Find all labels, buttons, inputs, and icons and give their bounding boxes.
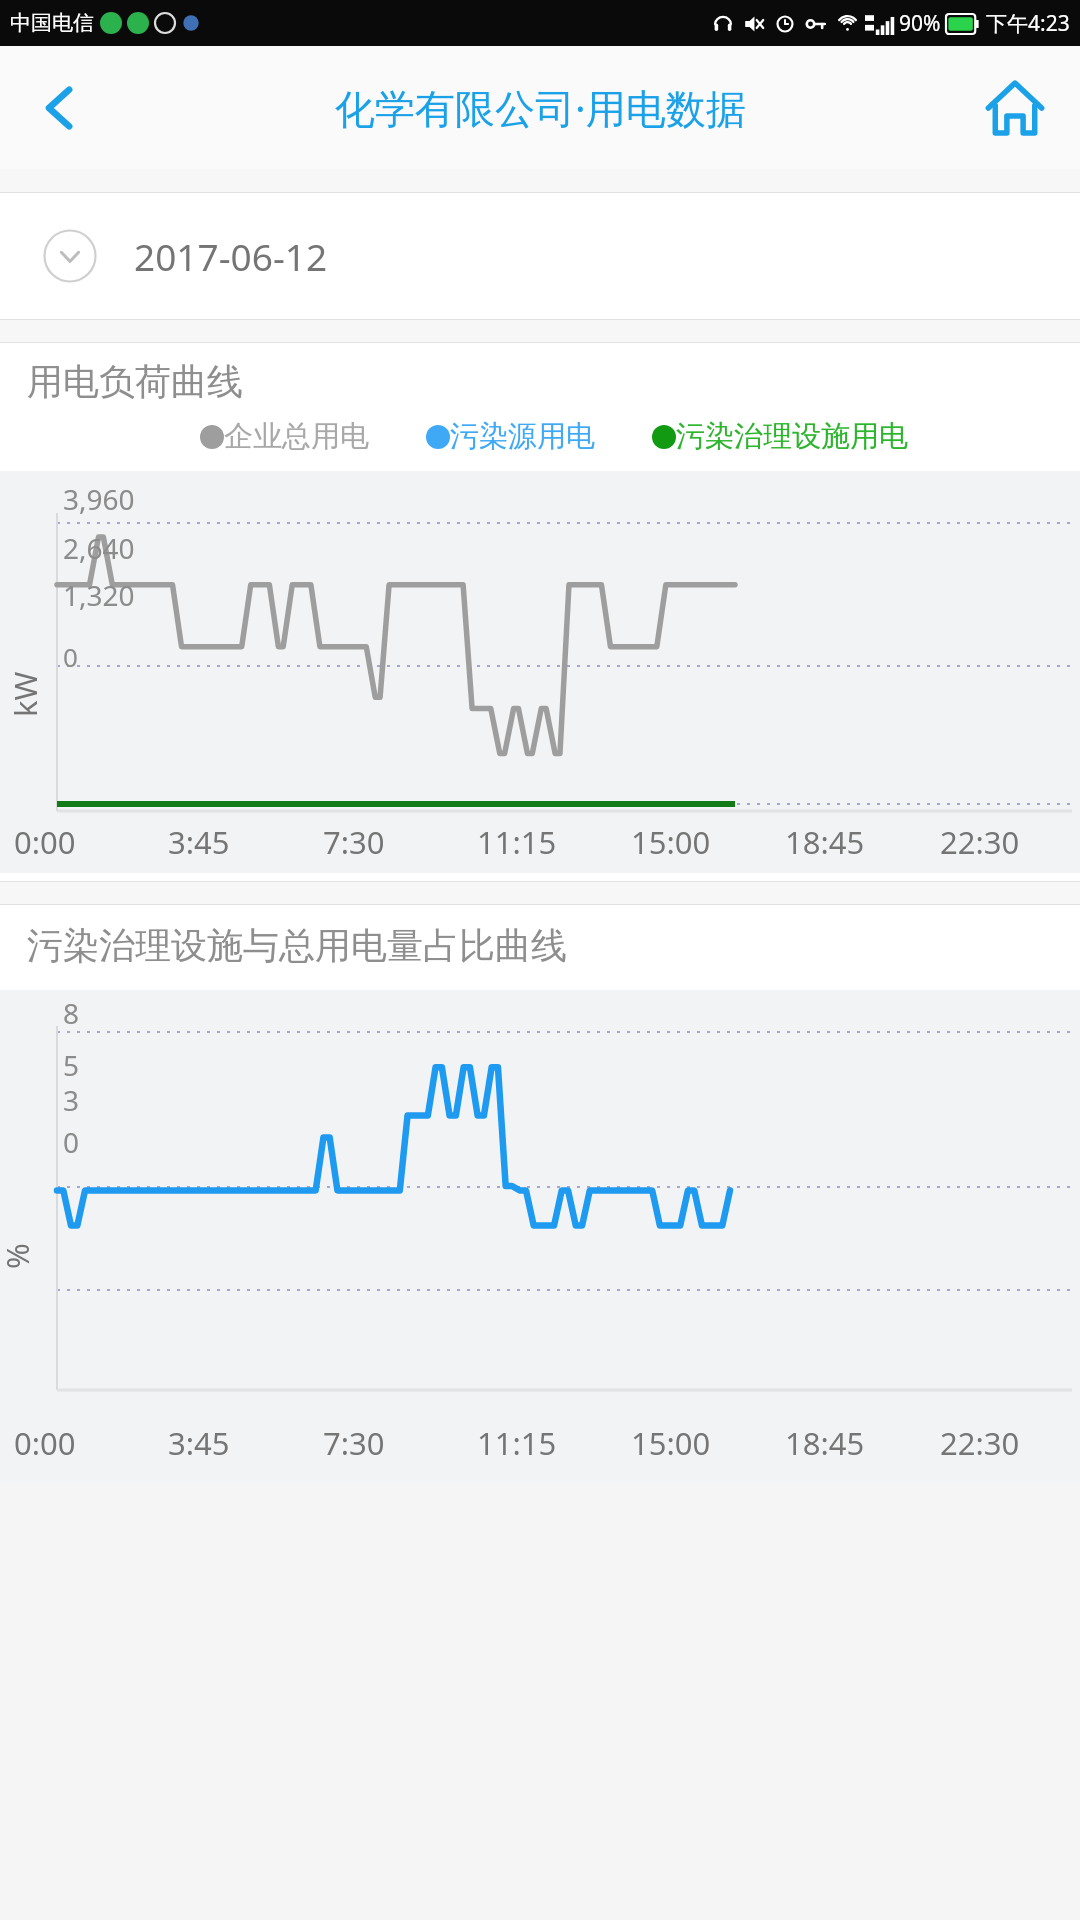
staticText: 企业总用电 xyxy=(224,418,369,455)
staticText: 8 xyxy=(63,994,80,1032)
staticText: 用电负荷曲线 xyxy=(27,359,243,404)
button[interactable]: 2017-06-12 xyxy=(0,193,1080,319)
staticText: 7:30 xyxy=(323,1422,463,1464)
staticText: 3:45 xyxy=(168,821,308,863)
staticText: 11:15 xyxy=(477,1422,617,1464)
staticText: 22:30 xyxy=(940,821,1080,863)
staticText: 22:30 xyxy=(940,1422,1080,1464)
button[interactable]: Home xyxy=(950,46,1080,169)
staticText: 5 xyxy=(63,1046,80,1084)
button[interactable]: Back xyxy=(0,46,120,169)
staticText: 7:30 xyxy=(323,821,463,863)
staticText: 18:45 xyxy=(785,1422,925,1464)
staticText: 污染源用电 xyxy=(450,418,595,455)
staticText: 0:00 xyxy=(14,821,154,863)
staticText: 污染治理设施与总用电量占比曲线 xyxy=(27,923,567,968)
staticText: 2,640 xyxy=(63,529,135,567)
staticText: 0 xyxy=(63,639,78,674)
staticText: % xyxy=(0,1243,38,1269)
staticText: 下午4:23 xyxy=(986,9,1070,38)
staticText: 90% xyxy=(899,9,941,38)
staticText: 18:45 xyxy=(785,821,925,863)
staticText: 化学有限公司·用电数据 xyxy=(335,80,746,135)
staticText: 2017-06-12 xyxy=(134,231,328,281)
staticText: 0:00 xyxy=(14,1422,154,1464)
staticText: 3:45 xyxy=(168,1422,308,1464)
staticText: 3,960 xyxy=(63,480,135,518)
staticText: 1,320 xyxy=(63,576,135,614)
staticText: 0 xyxy=(63,1123,80,1161)
staticText: 3 xyxy=(63,1081,80,1119)
staticText: 11:15 xyxy=(477,821,617,863)
staticText: 15:00 xyxy=(631,821,771,863)
staticText: 中国电信 xyxy=(10,10,94,36)
staticText: kW xyxy=(4,671,46,717)
staticText: 污染治理设施用电 xyxy=(676,418,908,455)
staticText: 15:00 xyxy=(631,1422,771,1464)
